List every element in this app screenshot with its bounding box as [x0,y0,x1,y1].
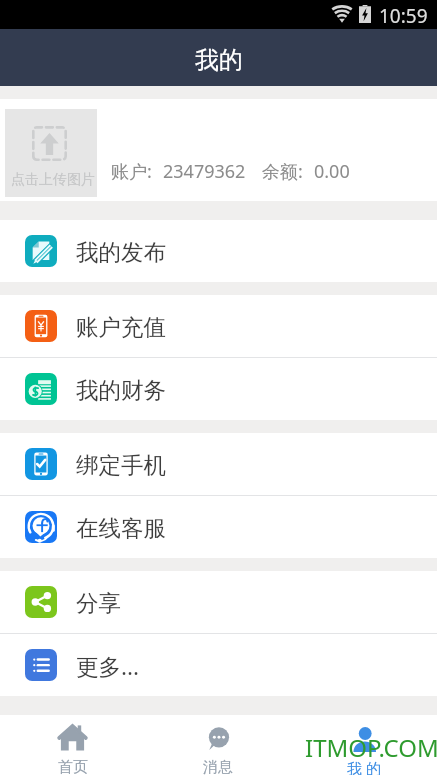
staticText: 我的发布 [76,238,166,266]
staticText: 我的财务 [76,376,166,404]
staticText: 10:59 [379,3,428,29]
button[interactable]: 我的财务 [0,358,437,420]
staticText: 点击上传图片 [11,171,95,189]
button[interactable]: 消息 [145,715,291,775]
staticText: 0.00 [314,159,350,184]
staticText: 分享 [76,589,121,617]
staticText: 首页 [58,758,88,775]
staticText: 余额: [262,159,303,184]
button[interactable]: 分享 [0,571,437,633]
button[interactable]: 点击上传图片 [5,109,97,197]
staticText: ITMOP.COM [305,731,437,764]
button[interactable]: 在线客服 [0,496,437,558]
staticText: 账户: [111,159,152,184]
button[interactable]: 我 的 [291,715,437,775]
button[interactable]: 我的发布 [0,220,437,282]
button[interactable]: 更多... [0,634,437,696]
staticText: 账户充值 [76,313,166,341]
staticText: 我的 [195,45,243,75]
staticText: 绑定手机 [76,451,166,479]
button[interactable]: 账户充值 [0,295,437,357]
staticText: 在线客服 [76,514,166,542]
staticText: 更多... [76,651,140,682]
button[interactable]: 首页 [0,715,145,775]
button[interactable]: 绑定手机 [0,433,437,495]
staticText: 消息 [203,758,233,775]
staticText: 我 的 [347,758,381,775]
staticText: 23479362 [163,159,246,184]
